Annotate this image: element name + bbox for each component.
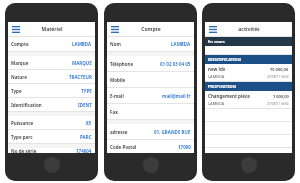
staticText: 27/08/11 6h54 — [267, 75, 289, 79]
button[interactable]: Menu — [208, 25, 218, 34]
button[interactable]: Type parc — [8, 130, 95, 143]
button[interactable]: Type — [8, 84, 95, 97]
staticText: Téléphone — [110, 61, 134, 67]
button[interactable]: Nom — [107, 37, 194, 51]
staticText: mail@mail.fr — [162, 93, 191, 99]
staticText: new ldv — [208, 66, 226, 72]
button[interactable]: E-mail — [107, 88, 194, 103]
button[interactable]: Code Postal — [107, 140, 194, 153]
staticText: PARC — [80, 134, 92, 140]
staticText: Marque — [11, 60, 29, 66]
button[interactable]: Compte — [8, 37, 95, 51]
button[interactable]: Identification — [8, 98, 95, 111]
button[interactable]: Home — [44, 157, 60, 173]
button[interactable]: Nature — [8, 70, 95, 83]
button[interactable]: Marque — [8, 56, 95, 69]
button[interactable]: Home — [241, 157, 257, 173]
staticText: IDENT — [78, 102, 92, 108]
staticText: Puissance — [11, 120, 34, 126]
staticText: Matériel — [41, 26, 63, 33]
staticText: activités — [238, 26, 260, 33]
button[interactable]: Menu — [110, 25, 120, 34]
staticText: IDENTIFICATION — [208, 57, 241, 62]
staticText: En cours — [208, 39, 225, 44]
staticText: Mobile — [110, 77, 126, 83]
staticText: Type — [11, 88, 22, 94]
staticText: TRACTEUR — [69, 74, 92, 80]
button[interactable]: new ldv — [205, 64, 292, 81]
staticText: No de série — [11, 148, 37, 153]
staticText: 27/08/11 6h54 — [267, 102, 289, 106]
staticText: Nom — [110, 41, 121, 47]
button[interactable]: Téléphone — [107, 56, 194, 71]
button[interactable]: Home — [143, 157, 159, 173]
staticText: LAMBDA — [208, 74, 225, 79]
button[interactable]: Fax — [107, 104, 194, 119]
button[interactable]: adresse — [107, 124, 194, 139]
button[interactable]: No de série — [8, 148, 95, 153]
staticText: Identification — [11, 102, 42, 108]
staticText: TYPE — [81, 88, 92, 94]
staticText: Type parc — [11, 134, 33, 140]
button[interactable]: Mobile — [107, 72, 194, 87]
staticText: MARQUE — [72, 60, 92, 66]
staticText: Code Postal — [110, 144, 137, 150]
staticText: Nature — [11, 74, 27, 80]
staticText: Compte — [11, 41, 29, 47]
staticText: Fax — [110, 109, 118, 115]
button[interactable]: Puissance — [8, 116, 95, 129]
staticText: 01 02 03 04 05 — [160, 61, 191, 67]
staticText: PROPOSITION — [208, 84, 236, 89]
staticText: 85 — [86, 120, 92, 126]
staticText: 01, GRANDE RUE — [154, 129, 191, 135]
staticText: Changement pièce — [208, 93, 250, 99]
staticText: 75 000,00 — [270, 67, 289, 72]
staticText: LAMBDA — [171, 41, 191, 47]
staticText: E-mail — [110, 93, 124, 99]
staticText: LAMBDA — [72, 41, 92, 47]
button[interactable]: Menu — [11, 25, 21, 34]
staticText: Compte — [141, 26, 161, 33]
staticText: LAMBDA — [208, 101, 225, 106]
button[interactable]: Changement pièce — [205, 91, 292, 108]
staticText: 17000 — [178, 144, 191, 150]
staticText: 174604 — [76, 148, 92, 153]
staticText: 1 000,00 — [273, 94, 289, 99]
staticText: adresse — [110, 129, 128, 135]
